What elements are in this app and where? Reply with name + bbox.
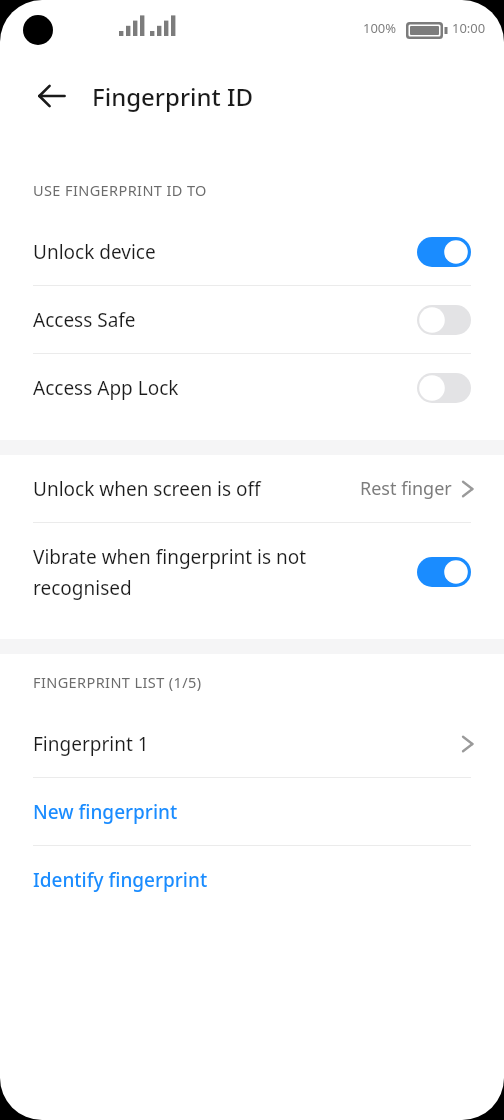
staticText: Access Safe: [33, 307, 417, 333]
staticText: Access App Lock: [33, 375, 417, 401]
staticText: Fingerprint 1: [33, 731, 458, 757]
staticText: Fingerprint ID: [92, 80, 254, 113]
staticText: New fingerprint: [33, 799, 178, 825]
button[interactable]: Access Safe: [0, 286, 504, 353]
button[interactable]: Back: [28, 72, 76, 120]
staticText: 10:00: [452, 19, 486, 37]
staticText: Identify fingerprint: [33, 867, 208, 893]
button[interactable]: Access App Lock: [0, 354, 504, 421]
staticText: USE FINGERPRINT ID TO: [33, 180, 207, 200]
button[interactable]: Fingerprint 1: [0, 710, 504, 777]
button[interactable]: Vibrate when fingerprint is not recognis…: [0, 523, 504, 621]
button[interactable]: New fingerprint: [0, 778, 504, 845]
button[interactable]: Identify fingerprint: [0, 846, 504, 913]
staticText: 100%: [363, 19, 397, 37]
staticText: Unlock device: [33, 239, 417, 265]
staticText: Unlock when screen is off: [33, 476, 360, 502]
staticText: FINGERPRINT LIST (1/5): [33, 672, 202, 692]
staticText: Vibrate when fingerprint is not recognis…: [33, 544, 417, 601]
staticText: Rest finger: [360, 476, 452, 501]
button[interactable]: Unlock device: [0, 218, 504, 285]
button[interactable]: Unlock when screen is off: [0, 455, 504, 522]
